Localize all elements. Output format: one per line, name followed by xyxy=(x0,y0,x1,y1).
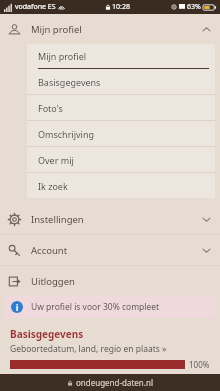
staticText: Basisgegevens xyxy=(10,327,84,341)
staticText: Uw profiel is voor 30% compleet xyxy=(31,301,160,313)
other: Profile xyxy=(8,23,21,36)
button[interactable]: Foto's xyxy=(27,95,215,120)
staticText: Foto's xyxy=(38,102,63,114)
button[interactable]: Basisgegevens xyxy=(27,69,215,94)
button[interactable]: Settings xyxy=(0,204,220,234)
staticText: Mijn profiel xyxy=(31,23,82,36)
other: Account xyxy=(8,244,21,257)
button[interactable]: Profile xyxy=(0,14,220,44)
staticText: Uitloggen xyxy=(31,275,75,288)
staticText: Basisgegevens xyxy=(38,76,101,88)
staticText: Mijn profiel xyxy=(38,50,87,62)
staticText: vodafone ES xyxy=(15,2,56,12)
staticText: Over mij xyxy=(38,154,74,166)
staticText: 10:28 xyxy=(112,2,130,12)
staticText: Geboortedatum, land, regio en plaats » xyxy=(10,343,167,355)
button[interactable]: Account xyxy=(0,235,220,265)
staticText: Ik zoek xyxy=(38,180,68,192)
staticText: Instellingen xyxy=(31,213,84,226)
staticText: Account xyxy=(31,244,68,257)
staticText: 100% xyxy=(189,359,210,370)
staticText: Omschrijving xyxy=(38,128,94,140)
button[interactable]: Ik zoek xyxy=(27,173,215,198)
button[interactable]: Mijn profiel xyxy=(27,44,215,68)
button[interactable]: Omschrijving xyxy=(27,121,215,146)
other: Settings xyxy=(8,213,21,226)
button[interactable]: Log out xyxy=(0,266,220,296)
staticText: 63% xyxy=(187,2,201,12)
staticText: ondeugend-daten.nl xyxy=(76,377,153,388)
button[interactable]: Over mij xyxy=(27,147,215,172)
other: Log out xyxy=(8,275,21,288)
staticText: i xyxy=(16,302,19,313)
